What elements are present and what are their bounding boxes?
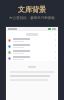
button[interactable]: Open — [6, 43, 58, 49]
button[interactable]: Open — [6, 49, 58, 55]
staticText: 办公更轻松，极简学习新体验 — [0, 16, 64, 20]
staticText: 文库背景 — [0, 5, 64, 14]
button[interactable] — [28, 66, 36, 68]
button[interactable]: Open — [6, 55, 58, 61]
button[interactable]: Open — [6, 37, 58, 43]
button[interactable]: More — [6, 31, 58, 37]
